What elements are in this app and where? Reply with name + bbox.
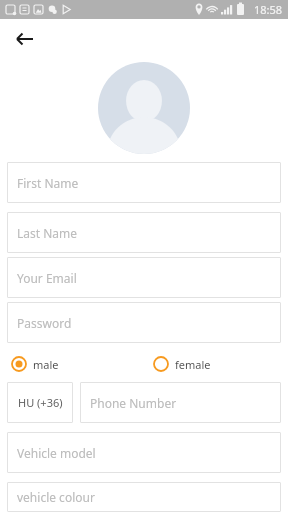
button[interactable]: Back: [9, 23, 41, 55]
button[interactable]: Last Name: [7, 212, 281, 253]
staticText: male: [33, 357, 59, 372]
staticText: Phone Number: [90, 395, 177, 411]
button[interactable]: Vehicle model: [7, 432, 281, 473]
staticText: 18:58: [254, 2, 283, 17]
button[interactable]: Phone Number: [80, 382, 281, 423]
button[interactable]: First Name: [7, 162, 281, 203]
staticText: HU (+36): [18, 395, 63, 410]
staticText: Last Name: [17, 225, 78, 241]
staticText: Your Email: [17, 270, 77, 286]
staticText: female: [175, 357, 211, 372]
button[interactable]: female: [153, 356, 217, 372]
staticText: Vehicle model: [17, 445, 96, 461]
button[interactable]: male: [11, 356, 65, 372]
button[interactable]: HU (+36): [7, 382, 73, 423]
staticText: First Name: [17, 175, 79, 191]
button[interactable]: Password: [7, 302, 281, 343]
button[interactable]: Profile photo: [98, 62, 190, 154]
button[interactable]: vehicle colour: [7, 482, 281, 512]
staticText: Password: [17, 315, 72, 331]
staticText: vehicle colour: [17, 489, 95, 505]
button[interactable]: Your Email: [7, 257, 281, 298]
